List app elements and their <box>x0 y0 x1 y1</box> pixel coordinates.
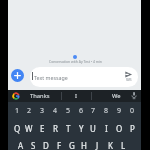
staticText: S <box>31 140 36 150</box>
staticText: 3 <box>40 106 45 116</box>
staticText: 0 <box>130 106 135 116</box>
staticText: 1 <box>15 106 20 116</box>
button[interactable]: G <box>66 138 78 150</box>
staticText: 7 <box>91 106 96 116</box>
button[interactable]: 4 <box>49 104 61 118</box>
staticText: L <box>121 140 126 150</box>
staticText: K <box>108 140 113 150</box>
button[interactable]: 0 <box>126 104 138 118</box>
button[interactable]: F <box>53 138 65 150</box>
button[interactable]: 2 <box>23 104 35 118</box>
button[interactable]: We <box>106 89 126 103</box>
button[interactable] <box>12 92 20 100</box>
button[interactable]: 1 <box>11 104 23 118</box>
staticText: D <box>43 140 49 150</box>
staticText: E <box>40 123 45 134</box>
button[interactable]: A <box>15 138 27 150</box>
staticText: F <box>57 140 62 150</box>
staticText: 9 <box>117 106 122 116</box>
staticText: 5 <box>66 106 71 116</box>
button[interactable]: D <box>40 138 52 150</box>
staticText: P <box>130 123 135 134</box>
staticText: 2 <box>27 106 32 116</box>
button[interactable]: P <box>126 121 138 135</box>
button[interactable]: R <box>49 121 61 135</box>
staticText: Conversation with Ay Test • 4 min <box>49 59 102 64</box>
staticText: A <box>18 140 24 150</box>
button[interactable]: W <box>23 121 35 135</box>
staticText: U <box>90 123 96 134</box>
button[interactable]: 3 <box>36 104 48 118</box>
button[interactable] <box>11 69 24 82</box>
button[interactable]: SMS <box>124 70 136 83</box>
button[interactable]: S <box>27 138 39 150</box>
staticText: W <box>25 123 33 134</box>
staticText: 8 <box>104 106 109 116</box>
button[interactable]: 5 <box>62 104 74 118</box>
staticText: Thanks <box>30 92 50 100</box>
button[interactable]: 6 <box>75 104 87 118</box>
button[interactable]: K <box>104 138 116 150</box>
staticText: I <box>105 123 108 134</box>
staticText: I <box>75 92 77 100</box>
button[interactable]: Thanks <box>27 89 53 103</box>
button[interactable]: 7 <box>87 104 99 118</box>
staticText: R <box>53 123 58 134</box>
staticText: T <box>66 123 71 134</box>
button[interactable]: J <box>91 138 103 150</box>
staticText: Text message <box>34 74 68 81</box>
button[interactable]: U <box>87 121 99 135</box>
staticText: 6 <box>79 106 84 116</box>
button[interactable]: H <box>78 138 90 150</box>
button[interactable]: I <box>100 121 112 135</box>
button[interactable]: 8 <box>100 104 112 118</box>
button[interactable] <box>130 91 138 100</box>
button[interactable]: L <box>117 138 129 150</box>
button[interactable]: Q <box>11 121 23 135</box>
button[interactable]: I <box>68 89 84 103</box>
button[interactable]: 9 <box>113 104 125 118</box>
button[interactable] <box>30 67 138 87</box>
button[interactable]: T <box>62 121 74 135</box>
staticText: SMS <box>126 78 132 82</box>
staticText: Y <box>79 123 84 134</box>
staticText: 4 <box>53 106 58 116</box>
staticText: G <box>69 140 75 150</box>
staticText: J <box>96 140 99 150</box>
staticText: We <box>112 92 121 100</box>
button[interactable]: Y <box>75 121 87 135</box>
button[interactable]: E <box>36 121 48 135</box>
button[interactable]: O <box>113 121 125 135</box>
staticText: H <box>81 140 87 150</box>
staticText: Q <box>14 123 21 134</box>
staticText: O <box>116 123 123 134</box>
